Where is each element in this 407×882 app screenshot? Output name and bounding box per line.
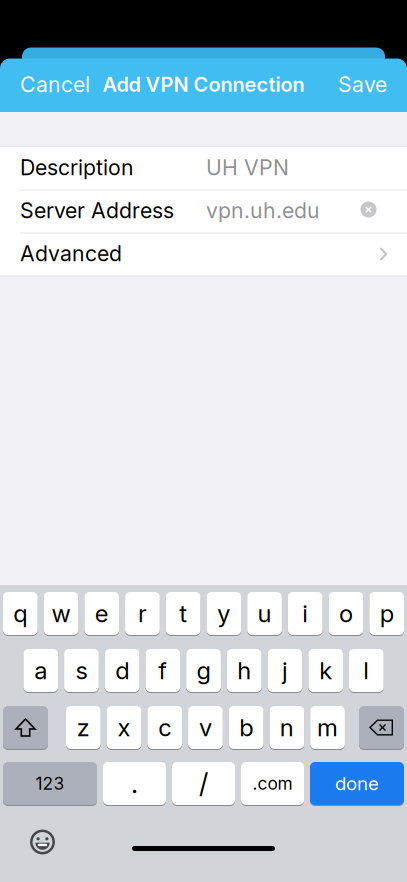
staticText: z [77,713,90,742]
button[interactable]: x [107,705,141,749]
staticText: e [95,599,109,628]
staticText: c [158,713,171,742]
button[interactable] [360,201,376,217]
button[interactable]: a [23,648,58,692]
staticText: v [199,713,212,742]
button[interactable]: Description [0,146,407,189]
button[interactable]: q [3,591,38,635]
staticText: o [339,599,353,628]
button[interactable]: v [188,705,223,749]
button[interactable]: s [64,648,99,692]
staticText: Cancel [20,72,90,97]
button[interactable]: / [172,761,235,805]
staticText: Description [20,155,134,180]
button[interactable]: b [229,705,263,749]
button[interactable] [359,705,404,749]
button[interactable]: p [369,591,404,635]
button[interactable]: g [186,648,221,692]
button[interactable]: . [103,761,166,805]
button[interactable]: f [145,648,180,692]
staticText: 123 [35,773,64,794]
button[interactable]: r [125,591,160,635]
button[interactable]: Server Address [0,189,407,232]
button[interactable]: Cancel [20,72,90,97]
staticText: Advanced [20,241,122,266]
button[interactable]: m [310,705,345,749]
button[interactable]: Advanced [0,232,407,275]
staticText: k [319,656,332,685]
staticText: x [118,713,131,742]
staticText: h [237,656,251,685]
staticText: / [199,768,208,799]
staticText: m [317,713,338,742]
button[interactable]: j [268,648,302,692]
button[interactable]: l [349,648,384,692]
button[interactable]: k [308,648,343,692]
button[interactable]: n [269,705,304,749]
button[interactable] [3,705,48,749]
button[interactable]: z [66,705,101,749]
button[interactable]: o [329,591,363,635]
staticText: p [380,599,394,628]
staticText: q [13,599,27,628]
button[interactable]: done [310,761,404,805]
staticText: Add VPN Connection [102,73,304,96]
staticText: vpn.uh.edu [206,198,320,223]
button[interactable]: w [44,591,78,635]
staticText: t [179,599,187,628]
button[interactable]: i [288,591,323,635]
button[interactable]: c [147,705,182,749]
button[interactable]: t [166,591,200,635]
staticText: d [115,656,129,685]
staticText: g [197,656,211,685]
staticText: Save [338,72,387,97]
button[interactable] [30,829,55,854]
staticText: u [258,599,272,628]
staticText: . [131,768,138,799]
button[interactable]: 123 [3,761,97,805]
staticText: Server Address [20,198,174,223]
staticText: b [239,713,253,742]
staticText: done [335,772,379,794]
button[interactable]: y [206,591,241,635]
staticText: .com [252,773,292,794]
button[interactable]: e [84,591,119,635]
button[interactable]: u [247,591,282,635]
button[interactable]: .com [241,761,304,805]
staticText: s [75,656,87,685]
staticText: f [158,656,167,685]
button[interactable]: Save [338,72,387,97]
staticText: w [52,599,71,628]
staticText: j [282,656,288,685]
staticText: n [280,713,294,742]
staticText: UH VPN [206,155,289,180]
staticText: a [34,656,47,685]
staticText: l [363,656,369,685]
staticText: r [138,599,147,628]
staticText: y [217,599,230,628]
staticText: i [302,599,308,628]
button[interactable]: h [227,648,262,692]
button[interactable]: d [105,648,139,692]
